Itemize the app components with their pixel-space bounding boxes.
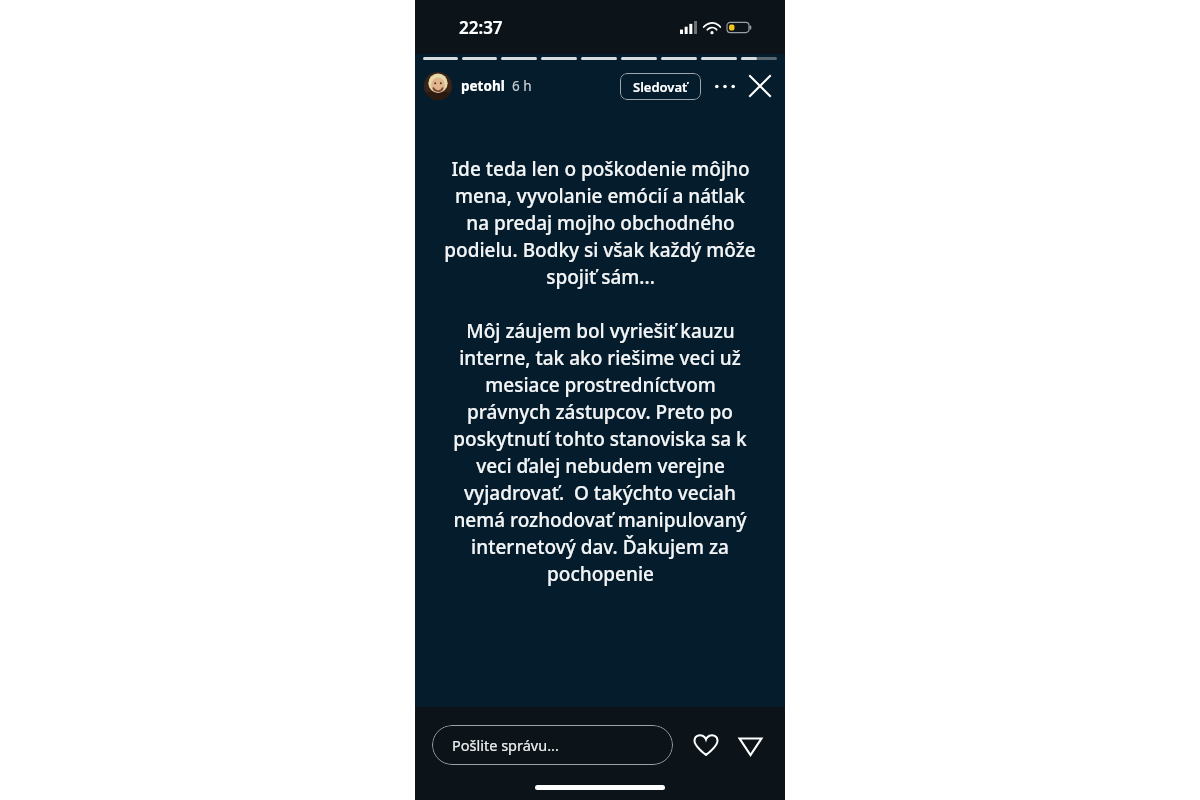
button[interactable]: Profile picture xyxy=(424,72,452,100)
button[interactable]: Sledovať xyxy=(620,73,701,100)
staticText: pochopenie xyxy=(547,561,654,587)
staticText: 22:37 xyxy=(459,16,503,39)
staticText: právnych zástupcov. Preto po xyxy=(467,399,733,425)
staticText: Ide teda len o poškodenie môjho xyxy=(451,156,750,182)
staticText: internetový dav. Ďakujem za xyxy=(471,534,729,560)
staticText: Môj záujem bol vyriešiť kauzu xyxy=(466,318,735,344)
button[interactable]: Pošlite správu... xyxy=(432,725,673,765)
staticText: mena, vyvolanie emócií a nátlak xyxy=(455,183,745,209)
staticText: 6 h xyxy=(512,77,532,95)
staticText: poskytnutí tohto stanoviska sa k xyxy=(453,426,747,452)
staticText: veci ďalej nebudem verejne xyxy=(476,453,725,479)
button[interactable]: Close xyxy=(744,70,776,102)
staticText: na predaj mojho obchodného xyxy=(466,210,735,236)
button[interactable]: Share xyxy=(733,728,767,762)
staticText: vyjadrovať. O takýchto veciah xyxy=(464,480,736,506)
staticText: podielu. Bodky si však každý môže xyxy=(444,237,756,263)
staticText: Sledovať xyxy=(633,78,688,96)
staticText: Pošlite správu... xyxy=(452,735,559,755)
staticText: nemá rozhodovať manipulovaný xyxy=(453,507,747,533)
staticText: petohl xyxy=(461,77,505,95)
staticText: mesiace prostredníctvom xyxy=(485,372,716,398)
button[interactable]: Like xyxy=(689,728,723,762)
staticText: interne, tak ako riešime veci už xyxy=(459,345,741,371)
staticText: spojiť sám... xyxy=(546,264,655,290)
button[interactable]: More options xyxy=(712,71,738,101)
